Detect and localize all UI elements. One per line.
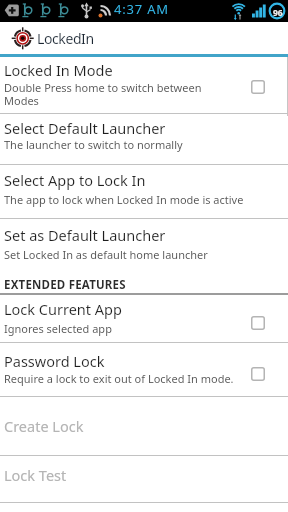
staticText: LockedIn bbox=[37, 29, 94, 48]
staticText: Lock Test bbox=[4, 465, 67, 485]
staticText: Double Press home to switch between Mode… bbox=[4, 80, 202, 108]
button[interactable]: Lock Current App bbox=[0, 294, 288, 342]
button[interactable]: Create Lock bbox=[0, 397, 288, 455]
staticText: Select Default Launcher bbox=[4, 118, 166, 138]
staticText: Set as Default Launcher bbox=[4, 225, 166, 245]
staticText: Create Lock bbox=[4, 416, 84, 436]
staticText: Locked In Mode bbox=[4, 60, 113, 80]
staticText: The app to lock when Locked In mode is a… bbox=[4, 192, 244, 207]
button[interactable]: Password Lock bbox=[0, 343, 288, 396]
staticText: 4:37 AM bbox=[114, 0, 169, 18]
staticText: Ignores selected app bbox=[4, 321, 112, 336]
staticText: Password Lock bbox=[4, 351, 105, 371]
button[interactable] bbox=[251, 316, 265, 330]
staticText: Require a lock to exit out of Locked In … bbox=[4, 371, 234, 386]
button[interactable]: Select App to Lock In bbox=[0, 165, 288, 218]
button[interactable] bbox=[251, 80, 265, 94]
button[interactable]: Lock Test bbox=[0, 456, 288, 502]
staticText: EXTENDED FEATURES bbox=[4, 277, 126, 293]
staticText: Lock Current App bbox=[4, 299, 122, 319]
button[interactable]: Select Default Launcher bbox=[0, 114, 288, 164]
staticText: Select App to Lock In bbox=[4, 170, 146, 190]
button[interactable]: Set as Default Launcher bbox=[0, 219, 288, 292]
button[interactable]: Locked In Mode bbox=[0, 57, 288, 113]
staticText: Set Locked In as default home launcher bbox=[4, 247, 208, 262]
button[interactable] bbox=[251, 367, 265, 381]
staticText: The launcher to switch to normally bbox=[4, 137, 183, 152]
staticText: 96 bbox=[273, 7, 283, 19]
